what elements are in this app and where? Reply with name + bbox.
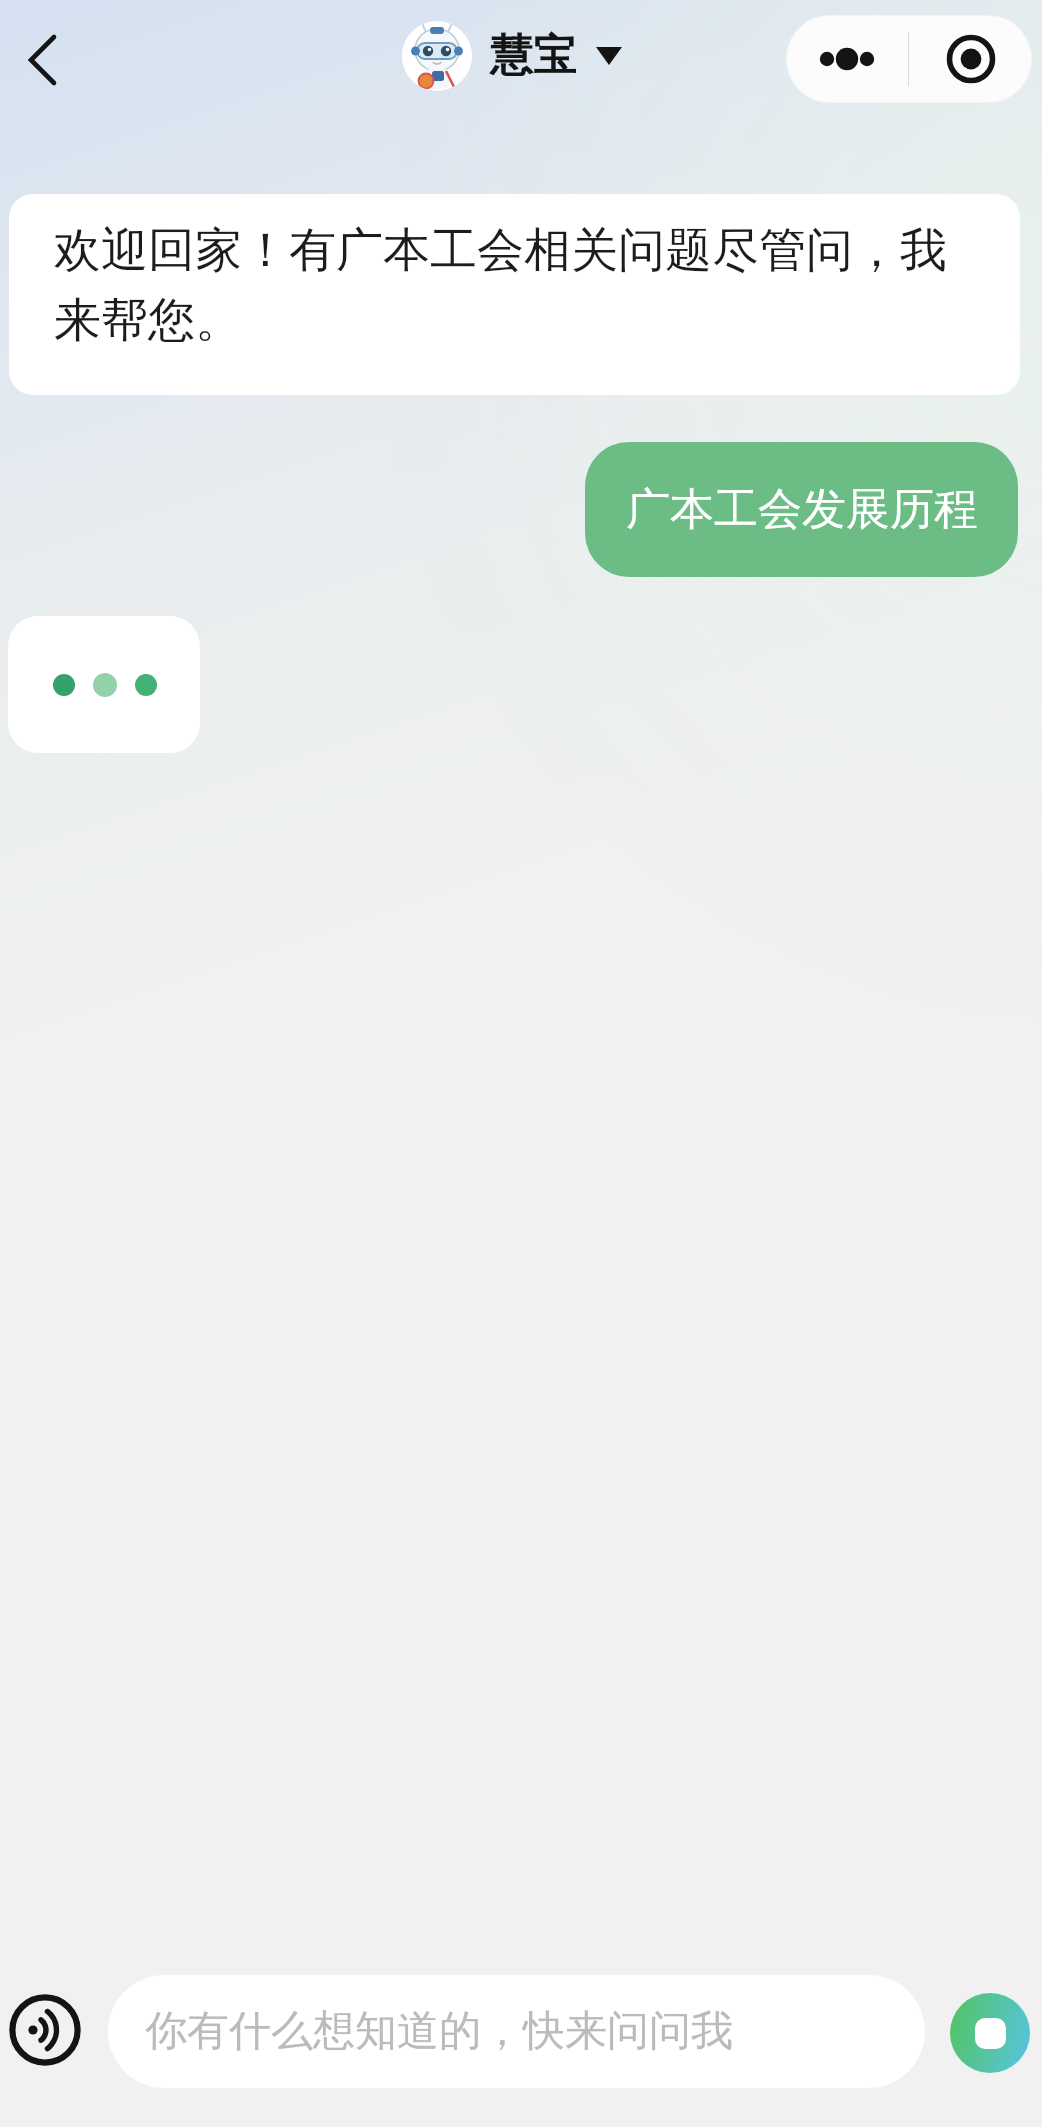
- button[interactable]: [14, 24, 70, 96]
- staticText: 广本工会发展历程: [626, 482, 978, 537]
- button[interactable]: 广本工会发展历程: [585, 442, 1018, 577]
- button[interactable]: 你有什么想知道的，快来问问我: [108, 1975, 925, 2088]
- staticText: 欢迎回家！有广本工会相关问题尽管问，我 来帮您。: [54, 221, 947, 349]
- staticText: 你有什么想知道的，快来问问我: [145, 2005, 733, 2058]
- button[interactable]: 慧宝: [402, 21, 622, 91]
- staticText: 慧宝: [490, 29, 576, 83]
- button[interactable]: [6, 1991, 84, 2069]
- button[interactable]: [909, 15, 1032, 103]
- button[interactable]: [950, 1993, 1030, 2073]
- button[interactable]: [786, 15, 908, 103]
